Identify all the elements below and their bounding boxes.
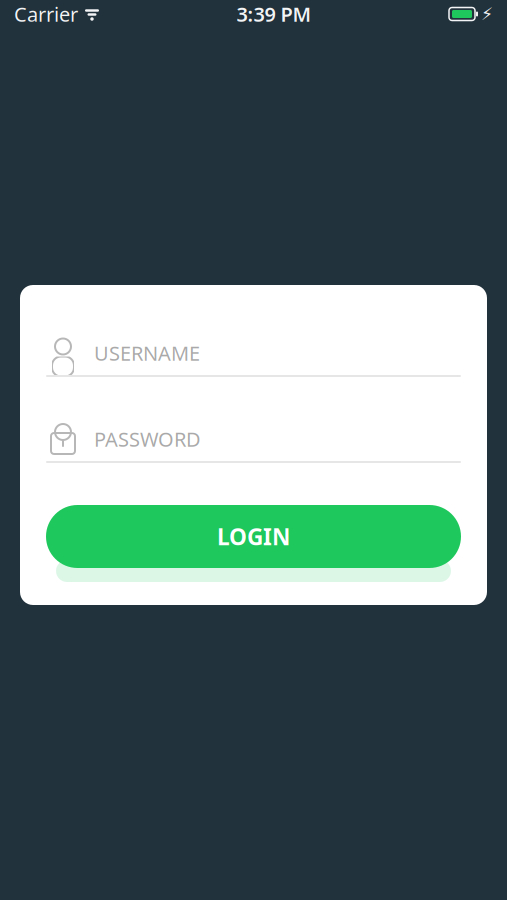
staticText: ⚡︎	[481, 4, 493, 24]
button[interactable]: LOGIN	[46, 505, 461, 568]
staticText: LOGIN	[217, 521, 290, 551]
staticText: PASSWORD	[94, 426, 201, 452]
staticText: 3:39 PM	[236, 1, 311, 27]
staticText: USERNAME	[94, 340, 200, 366]
staticText: Carrier	[14, 1, 78, 27]
